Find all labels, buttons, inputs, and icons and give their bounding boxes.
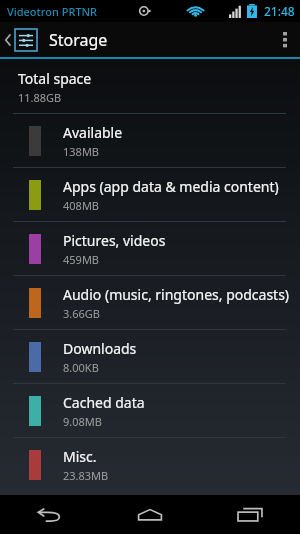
- staticText: Apps (app data & media content): [63, 177, 279, 196]
- staticText: 8.00KB: [63, 360, 99, 375]
- staticText: 9.08MB: [63, 414, 102, 429]
- staticText: 11.88GB: [18, 90, 62, 105]
- staticText: Misc.: [63, 447, 97, 466]
- staticText: 459MB: [63, 252, 100, 267]
- button[interactable]: Apps (app data & media content): [0, 168, 300, 221]
- staticText: Cached data: [63, 393, 145, 412]
- button[interactable]: Misc.: [0, 438, 300, 491]
- staticText: Videotron PRTNR: [7, 4, 98, 19]
- button[interactable]: Pictures, videos: [0, 222, 300, 275]
- button[interactable]: Back: [0, 495, 100, 534]
- staticText: Total space: [18, 69, 92, 88]
- staticText: Downloads: [63, 339, 137, 358]
- staticText: 138MB: [63, 144, 100, 159]
- staticText: Available: [63, 123, 123, 142]
- staticText: 23.83MB: [63, 468, 109, 483]
- button[interactable]: Navigate up: [0, 22, 43, 57]
- button[interactable]: Available: [0, 114, 300, 167]
- staticText: Storage: [49, 29, 108, 51]
- button[interactable]: Total space: [0, 59, 300, 113]
- staticText: 21:48: [264, 3, 295, 19]
- button[interactable]: Downloads: [0, 330, 300, 383]
- button[interactable]: Recent apps: [200, 495, 300, 534]
- staticText: 408MB: [63, 198, 100, 213]
- button[interactable]: Audio (music, ringtones, podcasts): [0, 276, 300, 329]
- staticText: 3.66GB: [63, 306, 100, 321]
- button[interactable]: More options: [270, 22, 300, 57]
- staticText: Pictures, videos: [63, 231, 166, 250]
- button[interactable]: Cached data: [0, 384, 300, 437]
- staticText: Audio (music, ringtones, podcasts): [63, 285, 290, 304]
- button[interactable]: Home: [100, 495, 200, 534]
